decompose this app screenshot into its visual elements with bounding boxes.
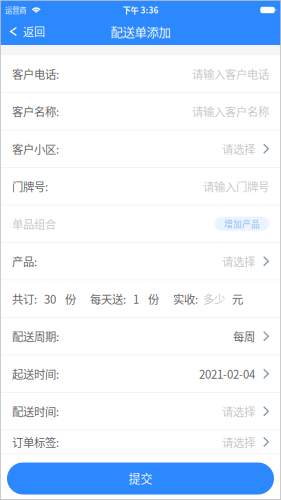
staticText: 提交: [128, 470, 152, 487]
staticText: 请输入客户名称: [192, 103, 269, 119]
staticText: 份: [148, 290, 159, 307]
button[interactable]: 提交: [7, 462, 274, 494]
staticText: 配送周期:: [12, 328, 59, 344]
staticText: 客户名称:: [12, 103, 59, 119]
staticText: 配送单添加: [110, 23, 170, 41]
staticText: 起送时间:: [12, 365, 59, 382]
staticText: 订单标签:: [12, 434, 59, 450]
staticText: 实收:: [173, 290, 198, 307]
staticText: 1: [133, 290, 139, 307]
button[interactable]: 增加产品: [215, 217, 269, 231]
staticText: 客户小区:: [12, 140, 59, 157]
staticText: 客户电话:: [12, 65, 59, 82]
staticText: 元: [232, 290, 243, 307]
staticText: 运营商: [5, 5, 26, 15]
button[interactable]: 门牌号:: [0, 168, 281, 205]
button[interactable]: 产品:: [0, 243, 281, 280]
button[interactable]: 配送时间:: [0, 393, 281, 430]
staticText: 返回: [23, 23, 45, 39]
button[interactable]: 客户名称:: [0, 93, 281, 130]
staticText: 下午 3:36: [122, 4, 158, 16]
staticText: 产品:: [12, 253, 37, 269]
staticText: 增加产品: [224, 217, 260, 230]
button[interactable]: 配送周期:: [0, 318, 281, 355]
staticText: 多少: [203, 290, 225, 307]
staticText: 请选择: [222, 403, 255, 419]
staticText: 每周: [233, 328, 255, 344]
staticText: 共订:: [12, 290, 37, 307]
staticText: 请输入门牌号: [203, 178, 269, 194]
button[interactable]: 客户小区:: [0, 130, 281, 168]
staticText: 30: [44, 290, 56, 307]
staticText: 单品组合: [12, 215, 56, 232]
staticText: 请选择: [222, 434, 255, 450]
staticText: 2021-02-04: [199, 365, 255, 382]
staticText: 请选择: [222, 253, 255, 269]
button[interactable]: 客户电话:: [0, 55, 281, 93]
button[interactable]: 订单标签:: [0, 430, 281, 454]
staticText: 请选择: [222, 140, 255, 157]
staticText: 份: [65, 290, 76, 307]
staticText: 门牌号:: [12, 178, 48, 194]
button[interactable]: 起送时间:: [0, 355, 281, 393]
staticText: 配送时间:: [12, 403, 59, 419]
staticText: 请输入客户电话: [192, 65, 269, 82]
button[interactable]: 返回: [0, 20, 55, 45]
staticText: 每天送:: [90, 290, 126, 307]
